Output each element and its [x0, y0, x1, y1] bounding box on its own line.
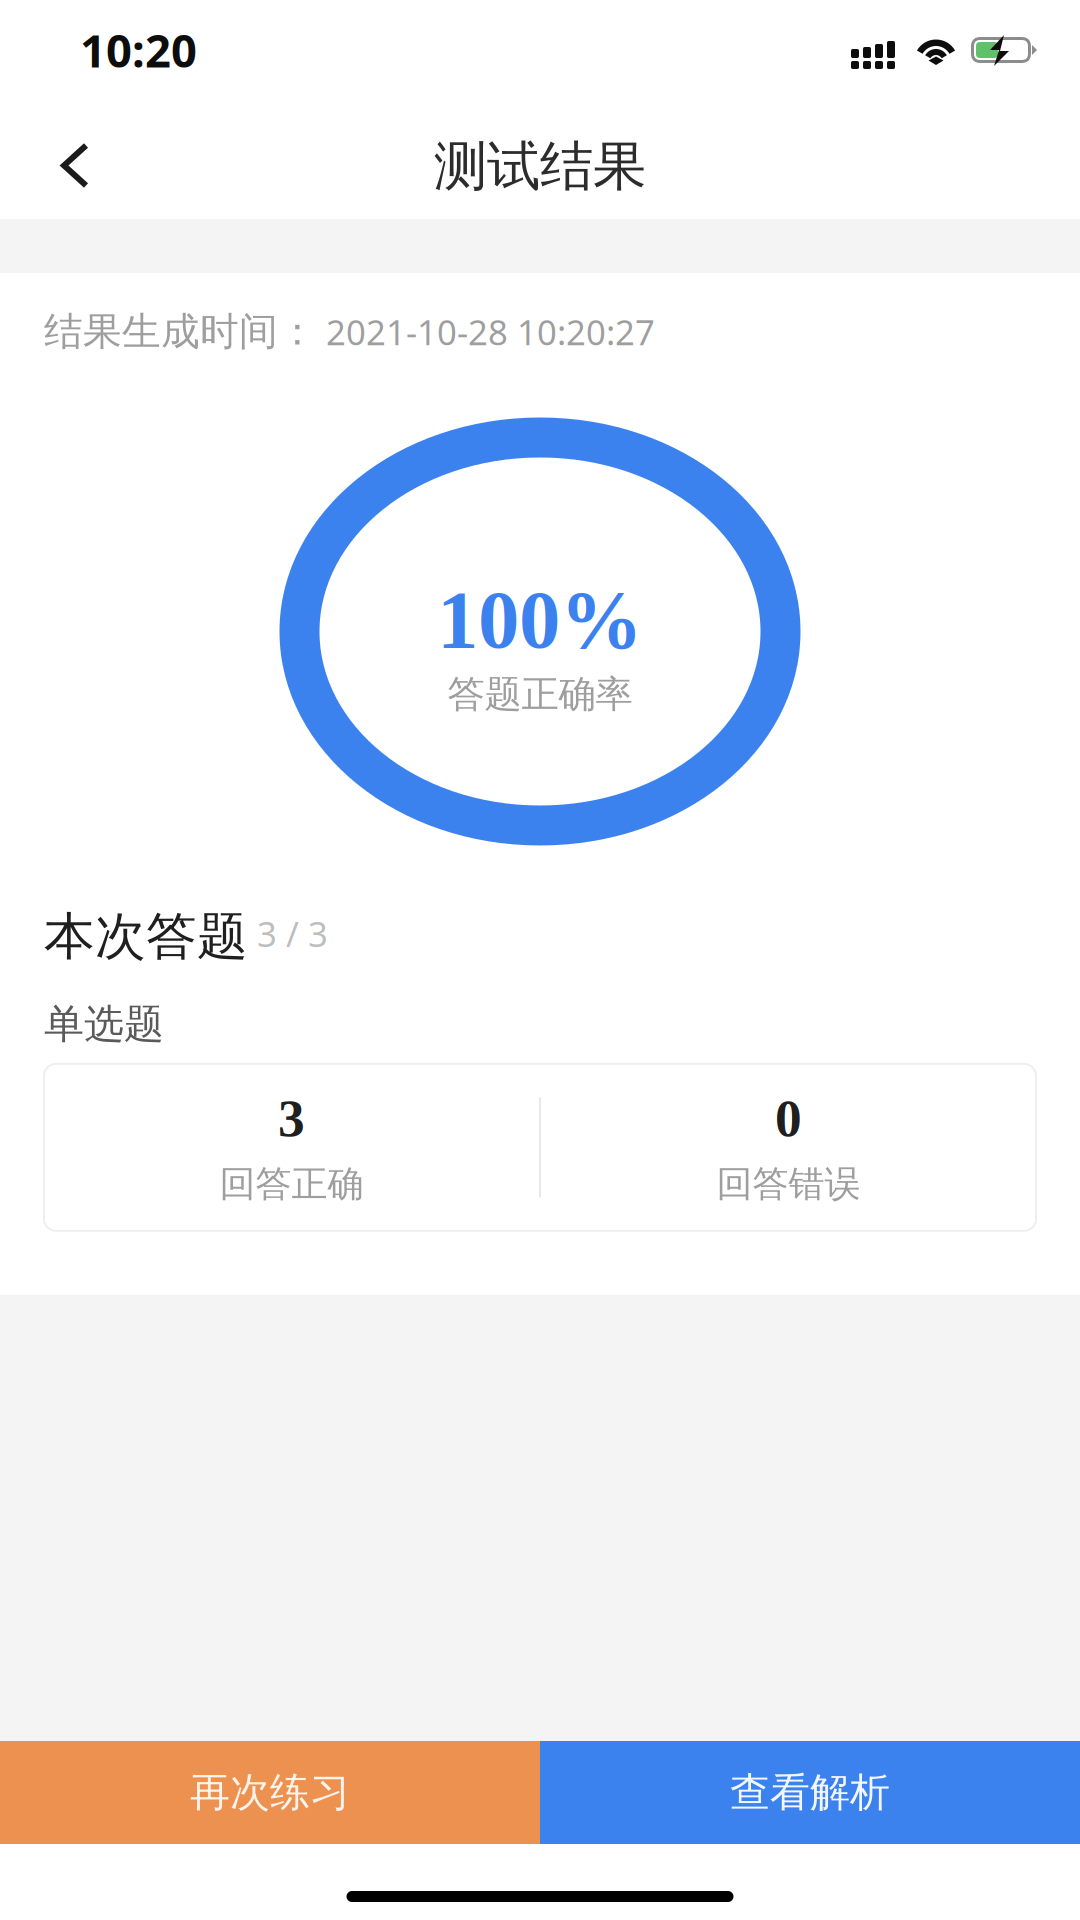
staticText: 10:20	[80, 20, 197, 80]
staticText: 结果生成时间：	[44, 308, 317, 355]
staticText: 2021-10-28 10:20:27	[317, 309, 655, 355]
staticText: 100%	[437, 574, 643, 665]
staticText: 0	[775, 1089, 802, 1148]
staticText: 测试结果	[434, 134, 646, 199]
staticText: 再次练习	[190, 1768, 350, 1817]
button[interactable]: 返回	[0, 100, 118, 219]
staticText: 本次答题	[44, 905, 248, 968]
staticText: 回答正确	[219, 1162, 363, 1206]
staticText: 查看解析	[730, 1768, 890, 1817]
staticText: 回答错误	[716, 1162, 860, 1206]
button[interactable]: 查看解析	[540, 1741, 1080, 1844]
staticText: 单选题	[44, 1000, 164, 1049]
button[interactable]: 再次练习	[0, 1741, 540, 1844]
staticText: 3	[278, 1089, 305, 1148]
staticText: 答题正确率	[447, 671, 632, 717]
staticText: 3 / 3	[257, 910, 328, 956]
